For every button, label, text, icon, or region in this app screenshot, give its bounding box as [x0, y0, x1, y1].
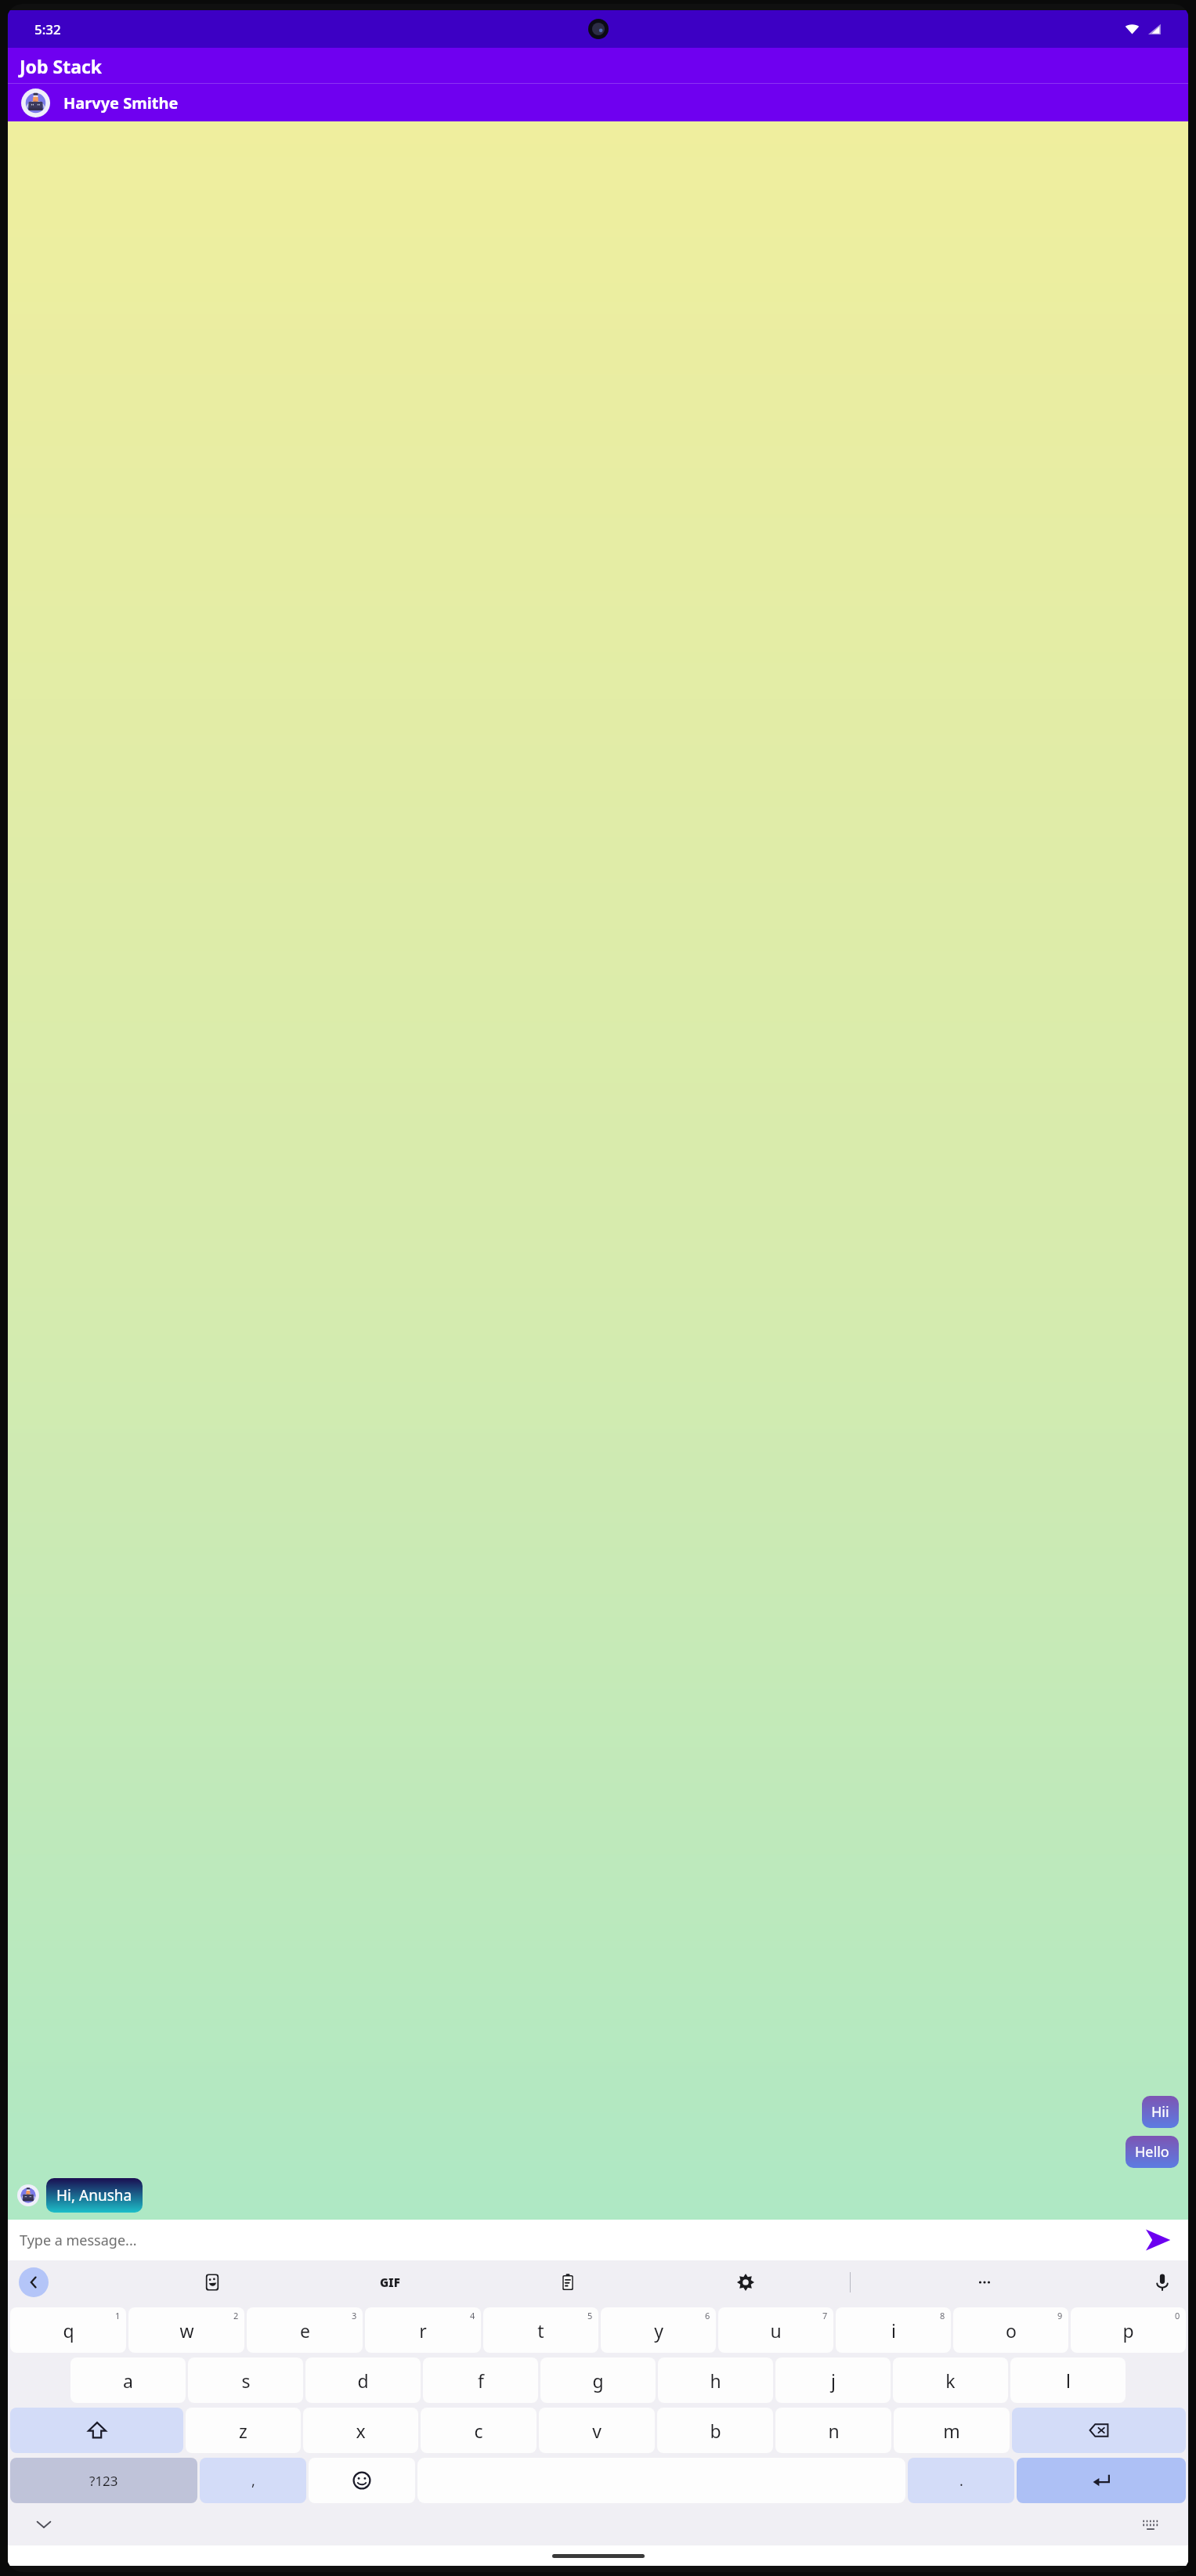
staticText: Hi, Anusha: [56, 2185, 132, 2206]
staticText: Hello: [1135, 2142, 1169, 2162]
staticText: w: [179, 2318, 194, 2343]
button[interactable]: t: [483, 2307, 598, 2353]
button[interactable]: a: [70, 2357, 186, 2403]
button[interactable]: Enter: [1017, 2458, 1186, 2503]
button[interactable]: d: [305, 2357, 421, 2403]
button[interactable]: Back: [19, 2267, 49, 2297]
button[interactable]: l: [1010, 2357, 1126, 2403]
staticText: o: [1006, 2318, 1017, 2343]
staticText: i: [891, 2318, 896, 2343]
button[interactable]: Hii: [1142, 2096, 1179, 2128]
button[interactable]: g: [540, 2357, 656, 2403]
button[interactable]: Send: [1140, 2222, 1176, 2258]
staticText: h: [710, 2368, 721, 2393]
staticText: a: [123, 2368, 133, 2393]
staticText: k: [945, 2368, 956, 2393]
staticText: n: [828, 2419, 840, 2443]
button[interactable]: Stickers: [197, 2267, 227, 2297]
button[interactable]: GIF: [375, 2267, 405, 2297]
button[interactable]: .: [908, 2458, 1014, 2503]
button[interactable]: Hello: [1126, 2136, 1179, 2168]
button[interactable]: h: [658, 2357, 773, 2403]
staticText: 4: [470, 2310, 475, 2321]
button[interactable]: Settings: [731, 2267, 761, 2297]
staticText: s: [241, 2368, 251, 2393]
button[interactable]: Clipboard: [553, 2267, 583, 2297]
staticText: l: [1066, 2368, 1071, 2393]
staticText: d: [357, 2368, 369, 2393]
button[interactable]: ,: [200, 2458, 306, 2503]
button[interactable]: j: [775, 2357, 891, 2403]
staticText: b: [710, 2419, 721, 2443]
button[interactable]: c: [421, 2408, 537, 2453]
button[interactable]: Hide keyboard: [30, 2510, 58, 2538]
button[interactable]: Hi, Anusha: [46, 2178, 143, 2213]
button[interactable]: e: [247, 2307, 363, 2353]
staticText: 6: [705, 2310, 710, 2321]
staticText: z: [239, 2419, 248, 2443]
button[interactable]: v: [539, 2408, 655, 2453]
staticText: e: [300, 2318, 310, 2343]
button[interactable]: Voice input: [1147, 2267, 1177, 2297]
button[interactable]: Type a message...: [20, 2231, 1140, 2250]
button[interactable]: Backspace: [1012, 2408, 1186, 2453]
staticText: Harvye Smithe: [63, 92, 179, 114]
button[interactable]: Job Stack: [8, 48, 1188, 84]
button[interactable]: s: [188, 2357, 303, 2403]
button[interactable]: m: [894, 2408, 1010, 2453]
staticText: Type a message...: [20, 2231, 137, 2250]
staticText: GIF: [380, 2274, 400, 2290]
staticText: m: [943, 2419, 960, 2443]
button[interactable]: r: [365, 2307, 481, 2353]
button[interactable]: o: [953, 2307, 1068, 2353]
button[interactable]: i: [836, 2307, 951, 2353]
button[interactable]: y: [601, 2307, 716, 2353]
button[interactable]: More options: [970, 2267, 999, 2297]
button[interactable]: w: [128, 2307, 244, 2353]
staticText: Hii: [1151, 2102, 1169, 2122]
button[interactable]: ?123: [10, 2458, 197, 2503]
staticText: 0: [1175, 2310, 1180, 2321]
button[interactable]: p: [1071, 2307, 1186, 2353]
button[interactable]: f: [423, 2357, 538, 2403]
button[interactable]: k: [893, 2357, 1008, 2403]
button[interactable]: z: [186, 2408, 301, 2453]
button[interactable]: Emoji: [309, 2458, 415, 2503]
button[interactable]: Harvye Smithe: [8, 84, 1188, 121]
button[interactable]: n: [775, 2408, 891, 2453]
button[interactable]: q: [10, 2307, 126, 2353]
staticText: ,: [251, 2471, 255, 2491]
staticText: c: [474, 2419, 483, 2443]
staticText: 5:32: [34, 20, 61, 38]
button[interactable]: b: [657, 2408, 773, 2453]
staticText: y: [654, 2318, 663, 2343]
staticText: x: [356, 2419, 366, 2443]
staticText: t: [537, 2318, 544, 2343]
staticText: 5: [587, 2310, 593, 2321]
staticText: ?123: [89, 2472, 118, 2490]
staticText: 1: [115, 2310, 121, 2321]
staticText: v: [592, 2419, 602, 2443]
staticText: 8: [940, 2310, 945, 2321]
staticText: Job Stack: [20, 54, 103, 78]
staticText: .: [959, 2471, 963, 2491]
staticText: u: [770, 2318, 782, 2343]
staticText: 7: [822, 2310, 828, 2321]
button[interactable]: Shift: [10, 2408, 183, 2453]
staticText: 3: [352, 2310, 357, 2321]
staticText: 2: [233, 2310, 239, 2321]
button[interactable]: u: [718, 2307, 833, 2353]
staticText: q: [63, 2318, 74, 2343]
staticText: g: [592, 2368, 604, 2393]
staticText: f: [478, 2368, 484, 2393]
button[interactable]: x: [303, 2408, 418, 2453]
button[interactable]: Switch keyboard: [1136, 2510, 1165, 2538]
staticText: j: [831, 2368, 836, 2393]
staticText: 9: [1057, 2310, 1063, 2321]
staticText: r: [419, 2318, 427, 2343]
staticText: p: [1122, 2318, 1134, 2343]
